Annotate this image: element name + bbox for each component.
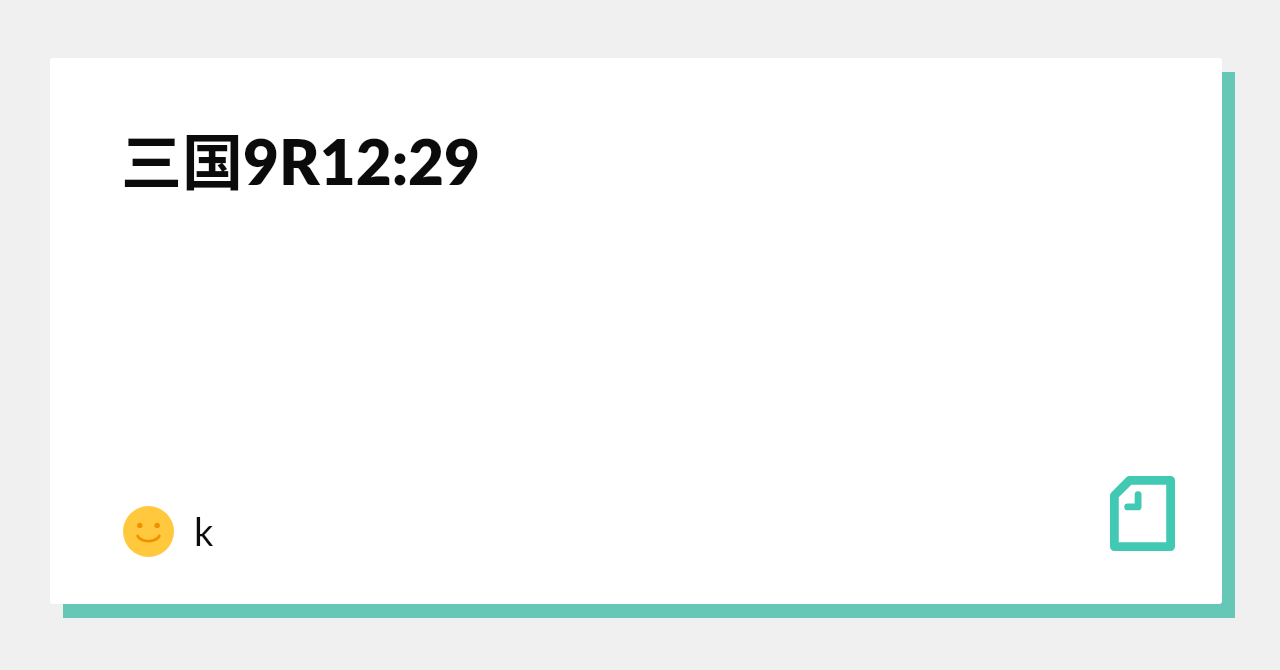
- button[interactable]: k: [123, 506, 214, 557]
- staticText: 三国9R12:29: [121, 114, 480, 202]
- staticText: k: [194, 508, 214, 554]
- button[interactable]: 三国9R12:29: [50, 58, 1222, 604]
- button[interactable]: Note: [1110, 476, 1175, 551]
